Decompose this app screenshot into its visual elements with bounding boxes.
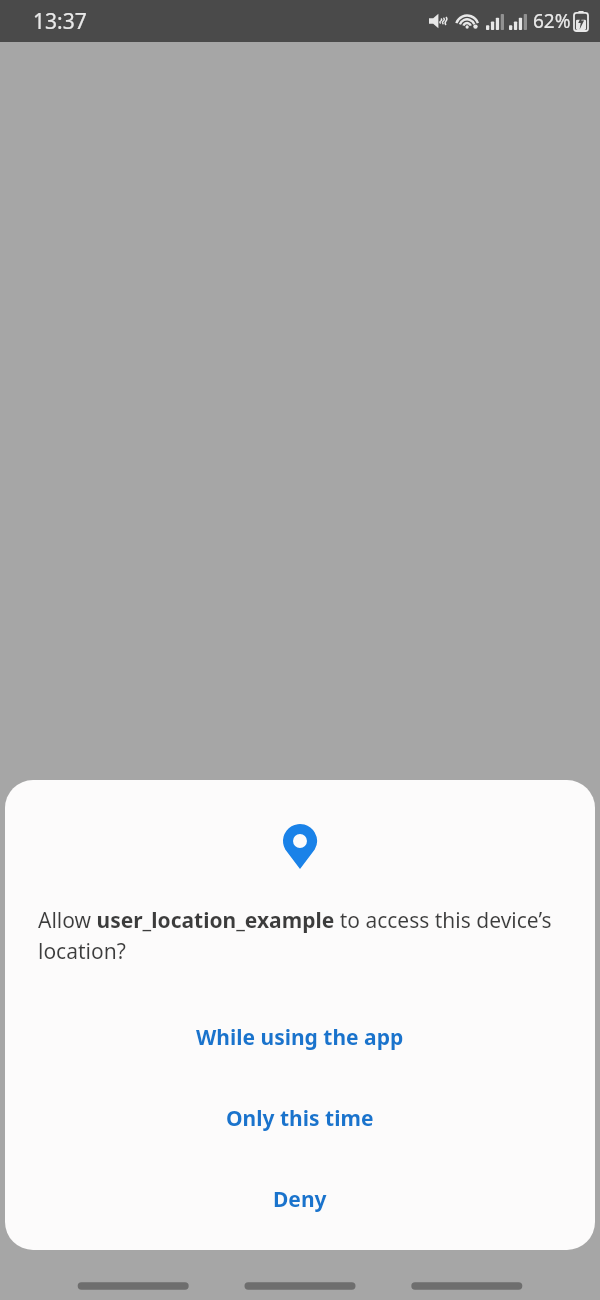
button[interactable]: Only this time bbox=[5, 1078, 595, 1159]
staticText: Allow user_location_example to access th… bbox=[38, 906, 562, 965]
button[interactable]: While using the app bbox=[5, 997, 595, 1078]
staticText: Only this time bbox=[226, 1104, 374, 1133]
button[interactable]: Deny bbox=[5, 1159, 595, 1240]
staticText: Deny bbox=[273, 1185, 327, 1214]
staticText: 62% bbox=[533, 8, 571, 34]
other: Location bbox=[283, 824, 317, 869]
staticText: While using the app bbox=[196, 1023, 404, 1052]
staticText: 13:37 bbox=[33, 7, 87, 36]
